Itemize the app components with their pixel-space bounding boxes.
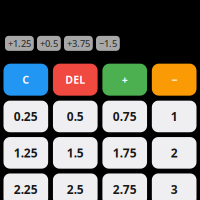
- staticText: 1: [171, 108, 178, 124]
- staticText: 2: [171, 145, 178, 161]
- button[interactable]: 0.75: [102, 101, 147, 132]
- button[interactable]: 1: [152, 101, 196, 132]
- staticText: 1.25: [14, 145, 38, 161]
- button[interactable]: 2.5: [53, 173, 97, 200]
- staticText: −: [171, 73, 177, 87]
- staticText: 3: [171, 181, 178, 197]
- button[interactable]: −1.5: [96, 36, 120, 51]
- staticText: 0.75: [113, 108, 137, 124]
- button[interactable]: 1.5: [53, 137, 97, 169]
- button[interactable]: 2.75: [102, 173, 147, 200]
- staticText: 2.5: [67, 181, 84, 197]
- staticText: 2.75: [113, 181, 137, 197]
- button[interactable]: +0.5: [37, 36, 61, 51]
- staticText: 0.25: [14, 108, 38, 124]
- button[interactable]: Add: [102, 64, 147, 96]
- staticText: +1.25: [8, 37, 31, 50]
- button[interactable]: 2: [152, 137, 196, 169]
- staticText: 0.5: [67, 108, 84, 124]
- staticText: DEL: [65, 73, 85, 87]
- button[interactable]: 2.25: [3, 173, 48, 200]
- button[interactable]: 3: [152, 173, 196, 200]
- button[interactable]: Delete: [53, 64, 97, 96]
- staticText: 1.5: [67, 145, 84, 161]
- button[interactable]: +1.25: [5, 36, 34, 51]
- button[interactable]: 0.25: [3, 101, 48, 132]
- staticText: +3.75: [67, 37, 90, 50]
- button[interactable]: Clear: [3, 64, 48, 96]
- button[interactable]: 1.75: [102, 137, 147, 169]
- button[interactable]: Subtract: [152, 64, 196, 96]
- staticText: 2.25: [14, 181, 38, 197]
- button[interactable]: 0.5: [53, 101, 97, 132]
- staticText: +: [122, 73, 128, 87]
- button[interactable]: +3.75: [64, 36, 93, 51]
- staticText: +0.5: [40, 37, 58, 50]
- button[interactable]: 1.25: [3, 137, 48, 169]
- staticText: C: [22, 73, 29, 87]
- staticText: 1.75: [113, 145, 137, 161]
- staticText: −1.5: [99, 37, 117, 50]
